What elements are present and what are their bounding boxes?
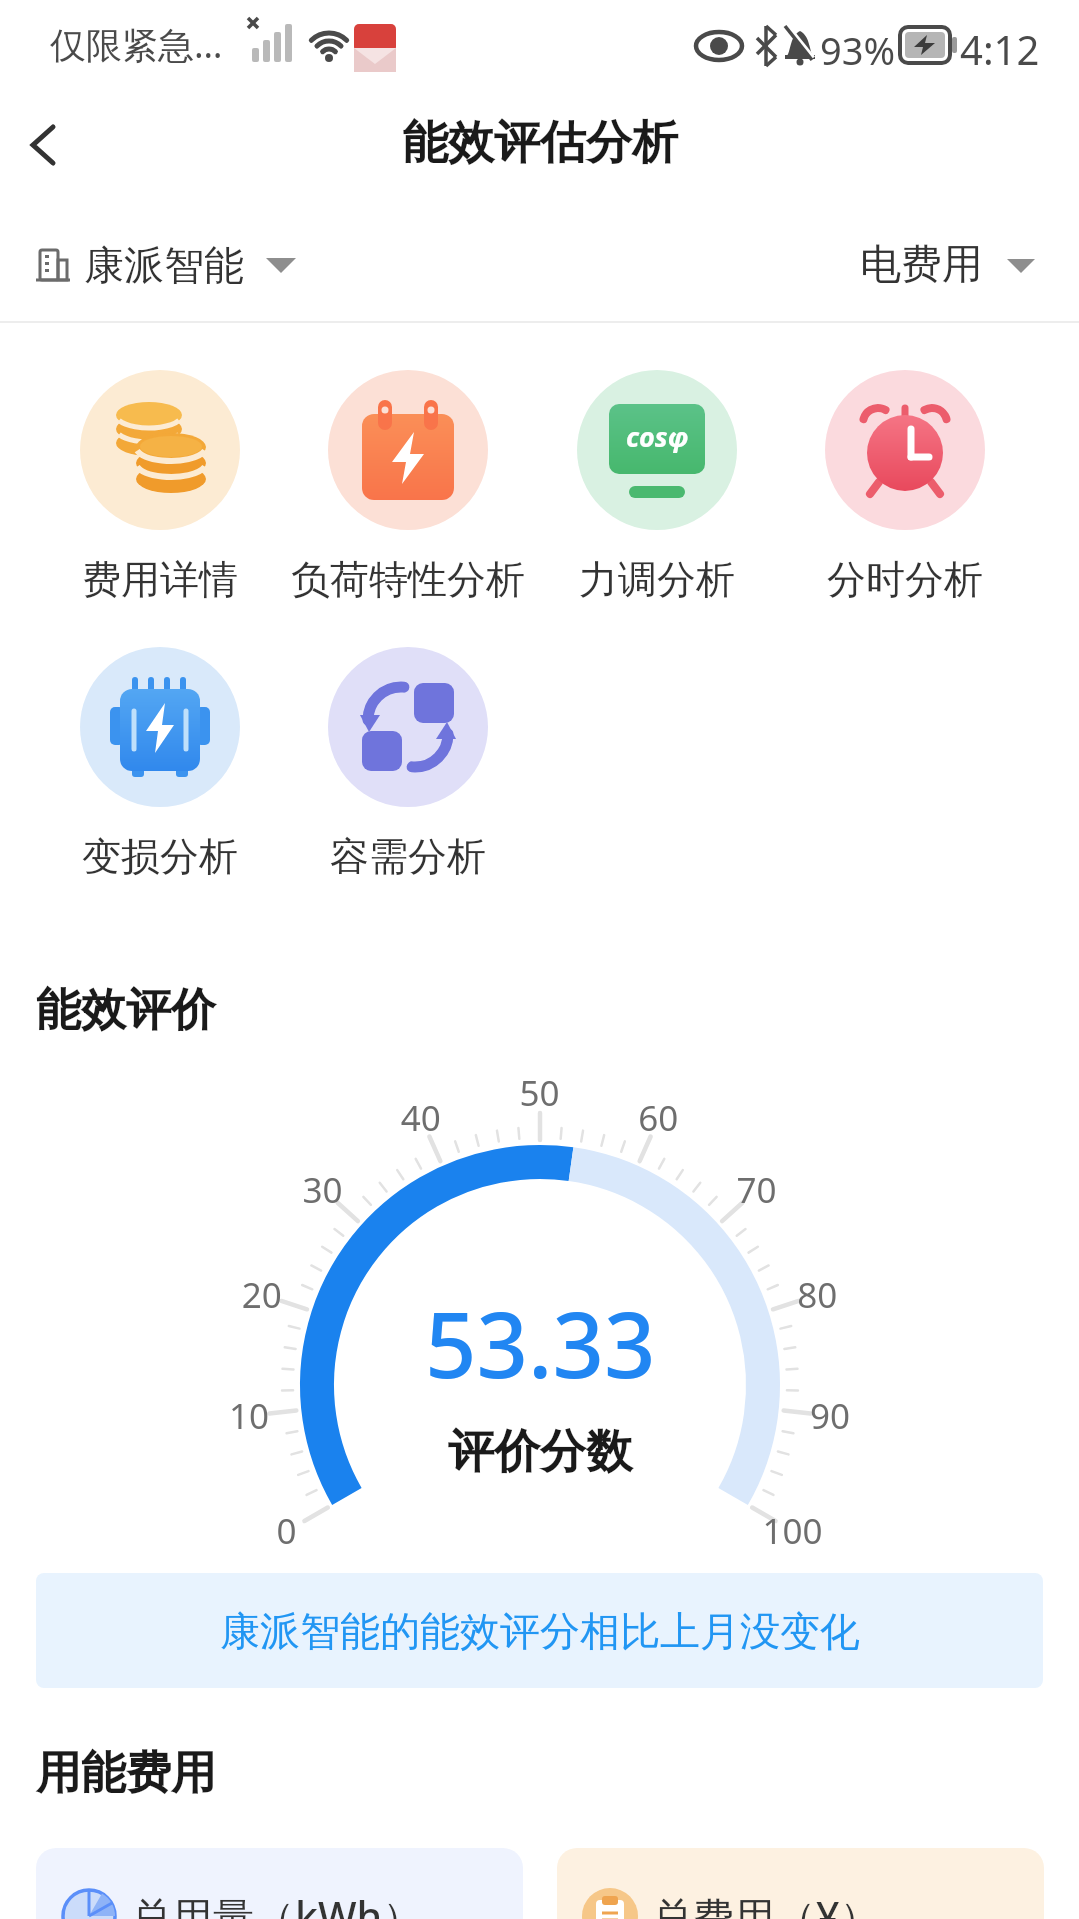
button[interactable]: 分时分析 — [785, 370, 1025, 604]
staticText: 仅限紧急… — [50, 20, 223, 69]
button[interactable]: 容需分析 — [288, 647, 528, 881]
button[interactable]: 电费用 — [860, 230, 1035, 300]
staticText: 康派智能 — [84, 240, 244, 290]
staticText: 变损分析 — [82, 832, 238, 881]
staticText: cosφ — [626, 418, 689, 455]
staticText: 力调分析 — [579, 555, 735, 604]
staticText: 用能费用 — [36, 1745, 216, 1802]
button[interactable]: 康派智能的能效评分相比上月没变化 — [36, 1573, 1043, 1688]
button[interactable]: cosφ — [537, 370, 777, 604]
staticText: 能效评价 — [36, 982, 216, 1039]
staticText: 4:12 — [960, 22, 1040, 76]
button[interactable] — [10, 110, 80, 180]
staticText: 电费用 — [860, 239, 983, 291]
staticText: 分时分析 — [827, 555, 983, 604]
staticText: 康派智能的能效评分相比上月没变化 — [220, 1606, 860, 1656]
staticText: 费用详情 — [82, 555, 238, 604]
staticText: 总用量（kWh） — [131, 1888, 424, 1919]
staticText: 总费用（¥） — [652, 1888, 881, 1919]
staticText: 评价分数 — [448, 1423, 632, 1481]
staticText: 53.33 — [425, 1282, 656, 1405]
button[interactable]: 康派智能 — [36, 230, 296, 300]
button[interactable]: 总费用（¥） — [557, 1848, 1044, 1919]
button[interactable]: 总用量（kWh） — [36, 1848, 523, 1919]
staticText: 能效评估分析 — [402, 114, 678, 172]
button[interactable]: 费用详情 — [40, 370, 280, 604]
staticText: 负荷特性分析 — [291, 555, 525, 604]
button[interactable]: 负荷特性分析 — [288, 370, 528, 604]
button[interactable]: 变损分析 — [40, 647, 280, 881]
staticText: 容需分析 — [330, 832, 486, 881]
staticText: 93% — [820, 24, 896, 76]
